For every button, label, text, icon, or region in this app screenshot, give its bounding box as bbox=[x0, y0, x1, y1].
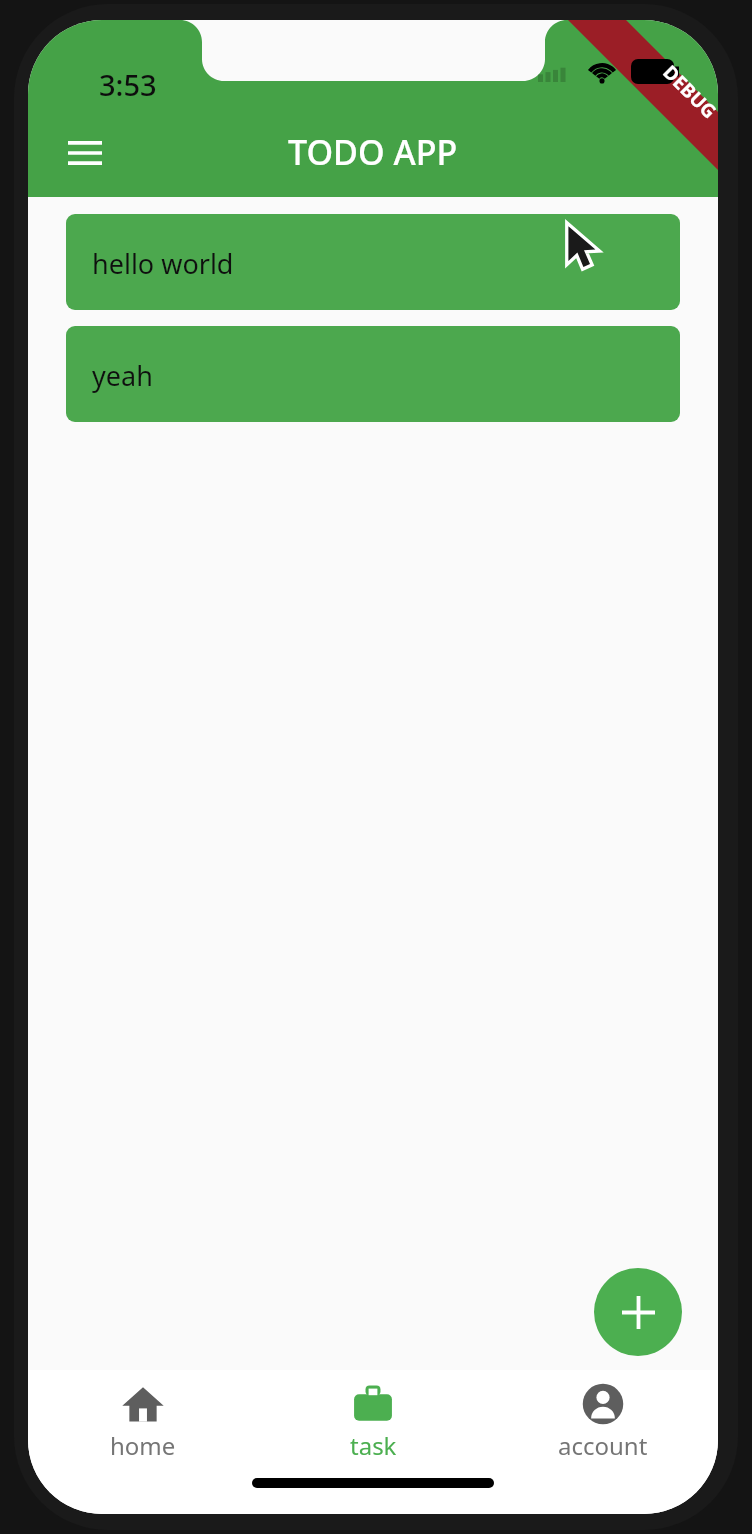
button[interactable]: yeah bbox=[66, 326, 680, 422]
button[interactable]: home bbox=[28, 1370, 258, 1474]
staticText: task bbox=[350, 1429, 397, 1462]
button[interactable]: Add task bbox=[594, 1268, 682, 1356]
button[interactable]: task bbox=[258, 1370, 488, 1474]
staticText: home bbox=[110, 1429, 176, 1462]
button[interactable]: hello world bbox=[66, 214, 680, 310]
staticText: TODO APP bbox=[288, 129, 458, 175]
staticText: hello world bbox=[92, 245, 234, 282]
staticText: yeah bbox=[92, 357, 153, 394]
button[interactable]: account bbox=[488, 1370, 718, 1474]
button[interactable]: Menu bbox=[54, 122, 116, 184]
staticText: 3:53 bbox=[99, 65, 157, 104]
staticText: account bbox=[558, 1429, 648, 1462]
staticText: DEBUG bbox=[657, 59, 718, 125]
